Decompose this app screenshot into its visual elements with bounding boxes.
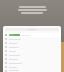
button[interactable]: Category icon bbox=[3, 53, 61, 57]
button[interactable]: Category icon bbox=[3, 57, 61, 61]
button[interactable]: Category icon bbox=[3, 37, 61, 41]
button[interactable]: Category icon bbox=[3, 49, 61, 53]
button[interactable]: Category icon bbox=[3, 33, 61, 37]
button[interactable]: Category icon bbox=[3, 61, 61, 65]
button[interactable]: Category icon bbox=[3, 45, 61, 49]
button[interactable]: Category icon bbox=[3, 41, 61, 45]
button[interactable] bbox=[5, 28, 59, 31]
button[interactable]: Category icon bbox=[3, 69, 61, 72]
button[interactable]: Category icon bbox=[3, 65, 61, 69]
